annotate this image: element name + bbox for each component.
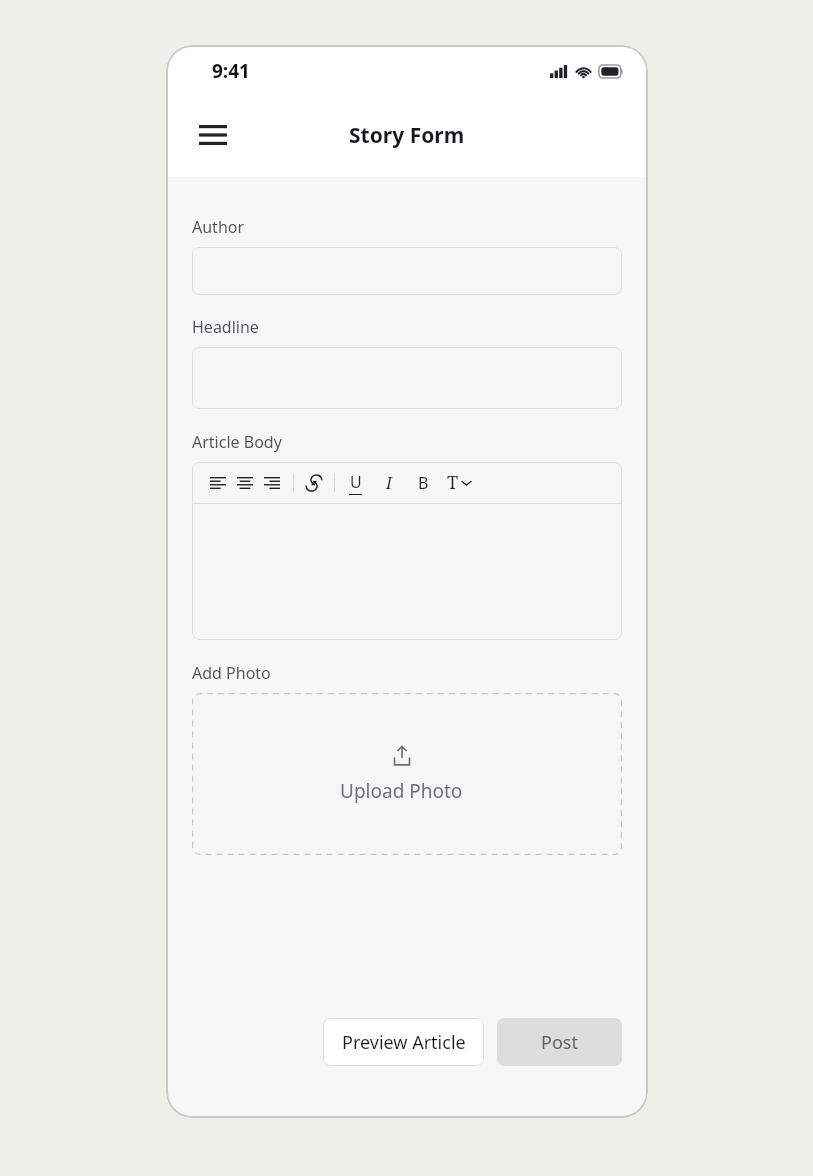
staticText: Story Form	[349, 121, 465, 150]
button[interactable]	[192, 347, 622, 409]
staticText: U	[350, 471, 362, 493]
staticText: I	[386, 472, 392, 494]
button[interactable]: Align center	[234, 472, 255, 494]
staticText: 9:41	[212, 58, 250, 84]
staticText: Headline	[192, 316, 259, 338]
staticText: Article Body	[192, 431, 282, 453]
button[interactable]: Bold	[413, 471, 433, 495]
staticText: Post	[541, 1030, 578, 1055]
staticText: Author	[192, 216, 245, 238]
button[interactable]: Text style	[447, 470, 471, 495]
button[interactable]: Underline	[345, 471, 365, 495]
staticText: Add Photo	[192, 662, 271, 684]
staticText: T	[447, 470, 459, 495]
button[interactable]: Preview Article	[323, 1018, 484, 1066]
button[interactable]: Align left	[207, 472, 228, 494]
staticText: Upload Photo	[340, 778, 463, 804]
button[interactable]: Align right	[261, 472, 282, 494]
button[interactable]	[192, 247, 622, 295]
staticText: B	[418, 472, 429, 494]
staticText: Preview Article	[342, 1030, 466, 1055]
button[interactable]: Insert link	[303, 471, 325, 495]
button[interactable]: Post	[497, 1018, 622, 1066]
button[interactable]: Open menu	[193, 115, 233, 155]
button[interactable]: Upload Photo	[192, 693, 622, 855]
button[interactable]: Italic	[379, 471, 399, 495]
